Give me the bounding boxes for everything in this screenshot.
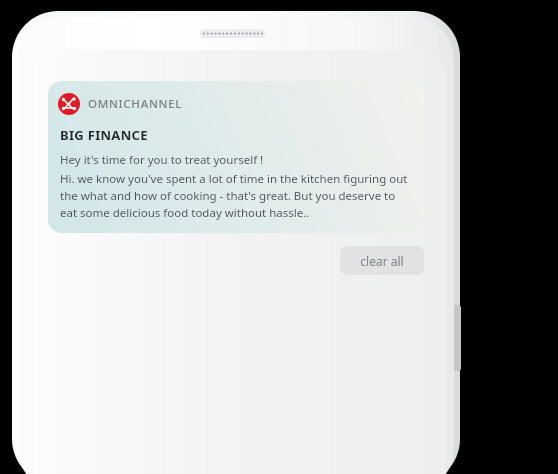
staticText: OMNICHANNEL (88, 96, 183, 112)
staticText: clear all (360, 253, 404, 269)
button[interactable]: Omnichannel logo (48, 81, 424, 233)
button[interactable]: clear all (340, 246, 424, 275)
staticText: Hey it's time for you to treat yourself … (60, 152, 264, 168)
staticText: Hi. we know you've spent a lot of time i… (60, 171, 410, 221)
staticText: BIG FINANCE (60, 126, 148, 144)
other: Omnichannel logo (58, 93, 80, 115)
